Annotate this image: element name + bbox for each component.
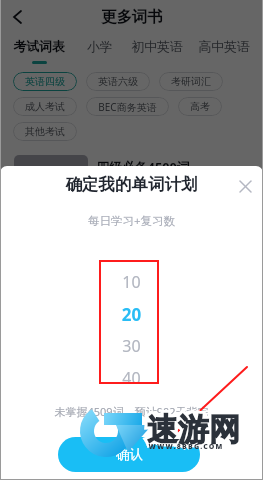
staticText: 30 xyxy=(0,335,263,357)
staticText: 每日学习+复习数 xyxy=(0,213,263,229)
button[interactable]: 高考 xyxy=(178,97,222,116)
staticText: 确认 xyxy=(116,446,143,463)
staticText: 四级必备4500词 xyxy=(96,158,190,175)
staticText: 考研词汇 xyxy=(171,75,211,88)
staticText: 更多词书 xyxy=(101,7,163,26)
staticText: BEC商务英语 xyxy=(98,100,157,114)
button[interactable]: 英语六级 xyxy=(86,72,150,91)
button[interactable]: 小学 xyxy=(87,39,113,55)
staticText: 成人考试 xyxy=(25,100,65,113)
staticText: 40 xyxy=(0,367,263,389)
button[interactable]: BEC商务英语 xyxy=(86,97,169,116)
staticText: 英语四级 xyxy=(25,75,65,88)
button[interactable]: 高中英语 xyxy=(198,39,250,55)
staticText: 速游网 xyxy=(147,410,240,449)
button[interactable]: 初中英语 xyxy=(131,39,183,55)
staticText: 20 xyxy=(0,303,263,326)
button[interactable]: Back xyxy=(5,5,29,29)
staticText: 其他考试 xyxy=(25,125,65,138)
staticText: 速游网 xyxy=(147,410,240,449)
staticText: WWW.8BBG.COM xyxy=(148,442,224,452)
staticText: 考试词表 xyxy=(13,39,65,55)
button[interactable]: 考试词表 xyxy=(13,39,65,64)
staticText: 10 xyxy=(0,271,263,293)
staticText: 未掌握4509词，预计902天背完 xyxy=(0,404,263,419)
button[interactable]: 英语四级 xyxy=(13,72,77,91)
button[interactable]: 考研词汇 xyxy=(159,72,223,91)
button[interactable]: 确认 xyxy=(58,437,200,472)
button[interactable]: Close xyxy=(231,172,259,200)
button[interactable]: 其他考试 xyxy=(13,122,77,141)
button[interactable]: 成人考试 xyxy=(13,97,77,116)
staticText: 英语六级 xyxy=(98,75,138,88)
staticText: 高考 xyxy=(190,100,210,113)
staticText: 确定我的单词计划 xyxy=(0,174,263,195)
